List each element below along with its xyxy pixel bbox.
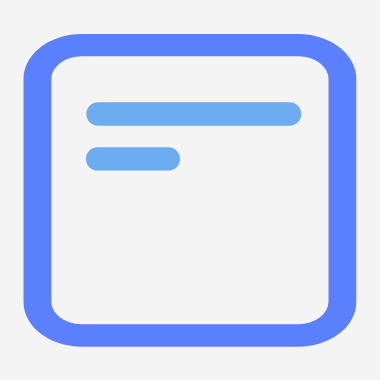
button[interactable]: Browser window icon bbox=[0, 0, 380, 380]
